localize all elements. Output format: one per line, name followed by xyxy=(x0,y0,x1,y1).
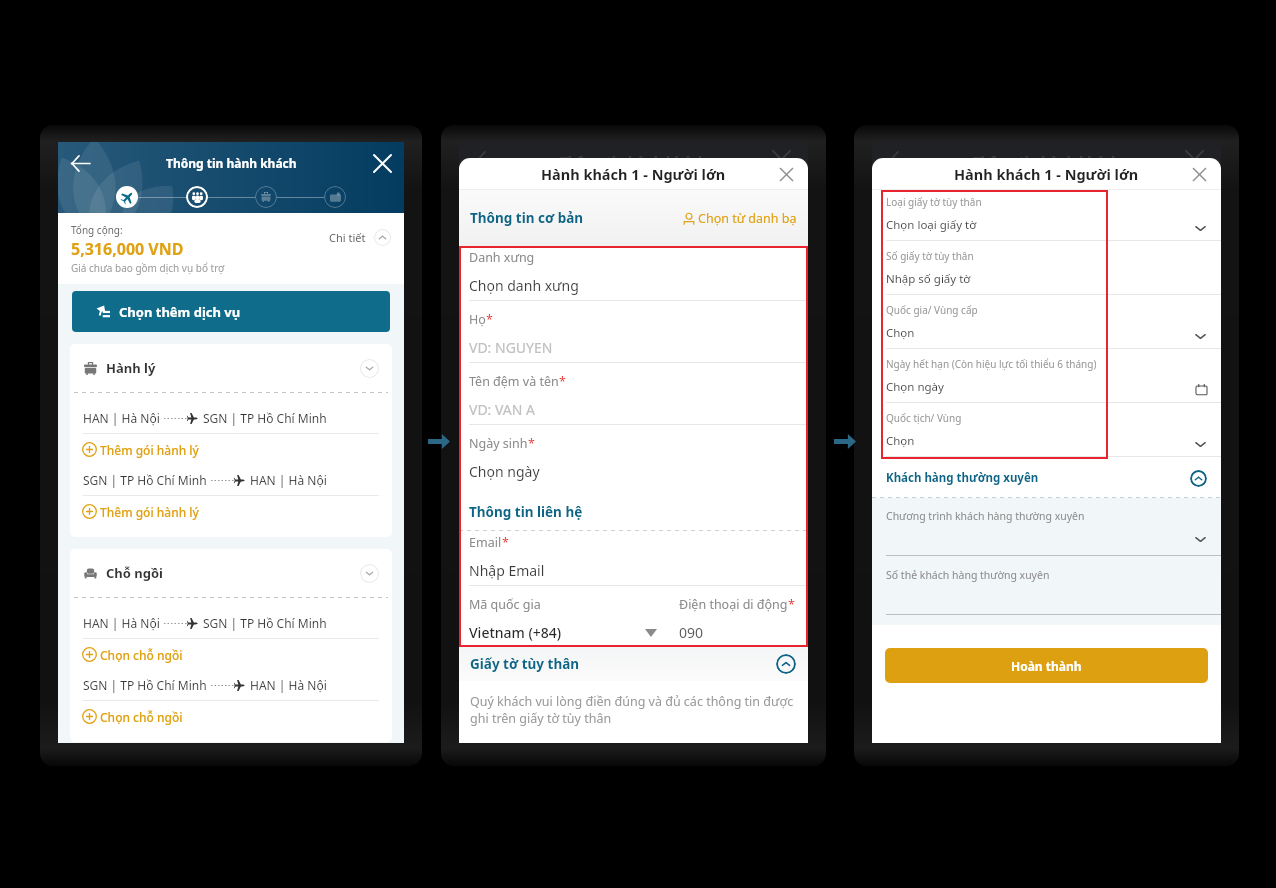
staticText: Thông tin hành khách xyxy=(166,155,297,171)
staticText: Chọn chỗ ngồi xyxy=(100,709,183,725)
button[interactable]: Khách hàng thường xuyên xyxy=(872,459,1221,497)
staticText: Hành khách 1 - Người lớn xyxy=(541,164,726,184)
button[interactable]: Close xyxy=(368,149,396,177)
button[interactable]: Chọn chỗ ngồi xyxy=(70,639,392,670)
staticText: 5,316,000 VND xyxy=(71,238,184,260)
button[interactable]: Hoàn thành xyxy=(885,648,1208,683)
button[interactable]: Ngày hết hạn (Còn hiệu lực tối thiểu 6 t… xyxy=(872,353,1221,407)
staticText: HAN | Hà Nội xyxy=(250,677,327,693)
staticText: Họ xyxy=(469,311,486,328)
staticText: Vietnam (+84) xyxy=(469,623,562,642)
button[interactable]: Thông tin cơ bản xyxy=(470,209,584,227)
staticText: Số giấy tờ tùy thân xyxy=(886,249,974,263)
button[interactable]: Thêm gói hành lý xyxy=(70,434,392,465)
button[interactable]: Quốc gia/ Vùng cấp xyxy=(872,299,1221,353)
staticText: SGN | TP Hồ Chí Minh xyxy=(83,472,207,488)
staticText: HAN | Hà Nội xyxy=(250,472,327,488)
staticText: Giấy tờ tùy thân xyxy=(470,655,580,673)
staticText: Thông tin liên hệ xyxy=(469,503,583,521)
staticText: * xyxy=(486,311,493,328)
staticText: HAN | Hà Nội xyxy=(83,615,160,631)
button[interactable]: Back xyxy=(66,149,94,177)
staticText: Khách hàng thường xuyên xyxy=(886,470,1039,486)
staticText: Chương trình khách hàng thường xuyên xyxy=(886,509,1085,523)
button[interactable]: Danh xưng xyxy=(459,246,808,308)
button[interactable]: Số giấy tờ tùy thân xyxy=(872,245,1221,299)
staticText: Tổng cộng: xyxy=(71,223,123,237)
button[interactable]: Close xyxy=(1188,163,1210,185)
button[interactable]: Quốc tịch/ Vùng xyxy=(872,407,1221,460)
button[interactable]: Chi tiết xyxy=(329,229,391,246)
staticText: Hành khách 1 - Người lớn xyxy=(954,164,1139,184)
staticText: Chỗ ngồi xyxy=(106,564,163,582)
staticText: Quốc gia/ Vùng cấp xyxy=(886,303,978,317)
staticText: Ngày sinh xyxy=(469,435,528,452)
staticText: * xyxy=(528,435,535,452)
button[interactable]: Email xyxy=(459,531,808,593)
staticText: Danh xưng xyxy=(469,249,535,266)
button[interactable]: Họ xyxy=(459,308,808,370)
staticText: Nhập số giấy tờ xyxy=(886,271,971,287)
button[interactable]: Close xyxy=(775,163,797,185)
staticText: Chọn loại giấy tờ xyxy=(886,217,977,233)
button[interactable]: Payment step xyxy=(324,186,346,208)
button[interactable]: Chọn chỗ ngồi xyxy=(70,701,392,732)
button[interactable]: Tên đệm và tên xyxy=(459,370,808,432)
staticText: Nhập Email xyxy=(469,561,545,580)
staticText: Giá chưa bao gồm dịch vụ bổ trợ xyxy=(71,261,225,275)
staticText: Chọn từ danh bạ xyxy=(698,210,797,227)
staticText: Quý khách vui lòng điền đúng và đủ các t… xyxy=(470,693,794,727)
button[interactable]: Ngày sinh xyxy=(459,432,808,494)
staticText: Chi tiết xyxy=(329,230,366,245)
staticText: * xyxy=(559,373,566,390)
staticText: Số thẻ khách hàng thường xuyên xyxy=(886,568,1050,582)
staticText: Loại giấy tờ tùy thân xyxy=(886,195,982,209)
staticText: Chọn xyxy=(886,433,915,449)
staticText: Chọn xyxy=(886,325,915,341)
button[interactable]: Thêm gói hành lý xyxy=(70,496,392,527)
staticText: Email xyxy=(469,534,502,551)
staticText: Chọn thêm dịch vụ xyxy=(119,303,241,321)
staticText: Thêm gói hành lý xyxy=(100,504,199,520)
staticText: Thông tin hành khách xyxy=(560,153,707,171)
button[interactable]: Chỗ ngồi xyxy=(70,549,392,597)
staticText: Mã quốc gia xyxy=(469,596,541,613)
staticText: 090 xyxy=(679,623,704,642)
staticText: Chọn danh xưng xyxy=(469,276,579,295)
staticText: VD: NGUYEN xyxy=(469,338,553,357)
button[interactable]: Chọn từ danh bạ xyxy=(683,210,797,227)
button[interactable]: Loại giấy tờ tùy thân xyxy=(872,191,1221,245)
staticText: Thông tin hành khách xyxy=(973,153,1120,171)
staticText: SGN | TP Hồ Chí Minh xyxy=(203,410,327,426)
button[interactable]: Mã quốc gia xyxy=(459,593,808,645)
staticText: Chọn ngày xyxy=(886,379,944,395)
staticText: Thêm gói hành lý xyxy=(100,442,199,458)
staticText: SGN | TP Hồ Chí Minh xyxy=(83,677,207,693)
staticText: Ngày hết hạn (Còn hiệu lực tối thiểu 6 t… xyxy=(886,357,1097,371)
staticText: Hoàn thành xyxy=(1011,658,1082,674)
button[interactable]: Flight step xyxy=(116,186,138,208)
button[interactable]: Baggage step xyxy=(255,186,277,208)
staticText: VD: VAN A xyxy=(469,400,536,419)
button[interactable]: Hành lý xyxy=(70,344,392,392)
staticText: * xyxy=(788,596,795,613)
button[interactable]: Giấy tờ tùy thân xyxy=(459,647,808,681)
staticText: * xyxy=(502,534,509,551)
staticText: SGN | TP Hồ Chí Minh xyxy=(203,615,327,631)
staticText: Điện thoại di động xyxy=(679,596,788,613)
button[interactable]: Chọn thêm dịch vụ xyxy=(72,291,390,332)
staticText: Chọn chỗ ngồi xyxy=(100,647,183,663)
staticText: Hành lý xyxy=(106,359,156,377)
staticText: Chọn ngày xyxy=(469,462,540,481)
staticText: HAN | Hà Nội xyxy=(83,410,160,426)
staticText: Tên đệm và tên xyxy=(469,373,559,390)
button[interactable]: Passenger step xyxy=(186,186,208,208)
staticText: Quốc tịch/ Vùng xyxy=(886,411,962,425)
